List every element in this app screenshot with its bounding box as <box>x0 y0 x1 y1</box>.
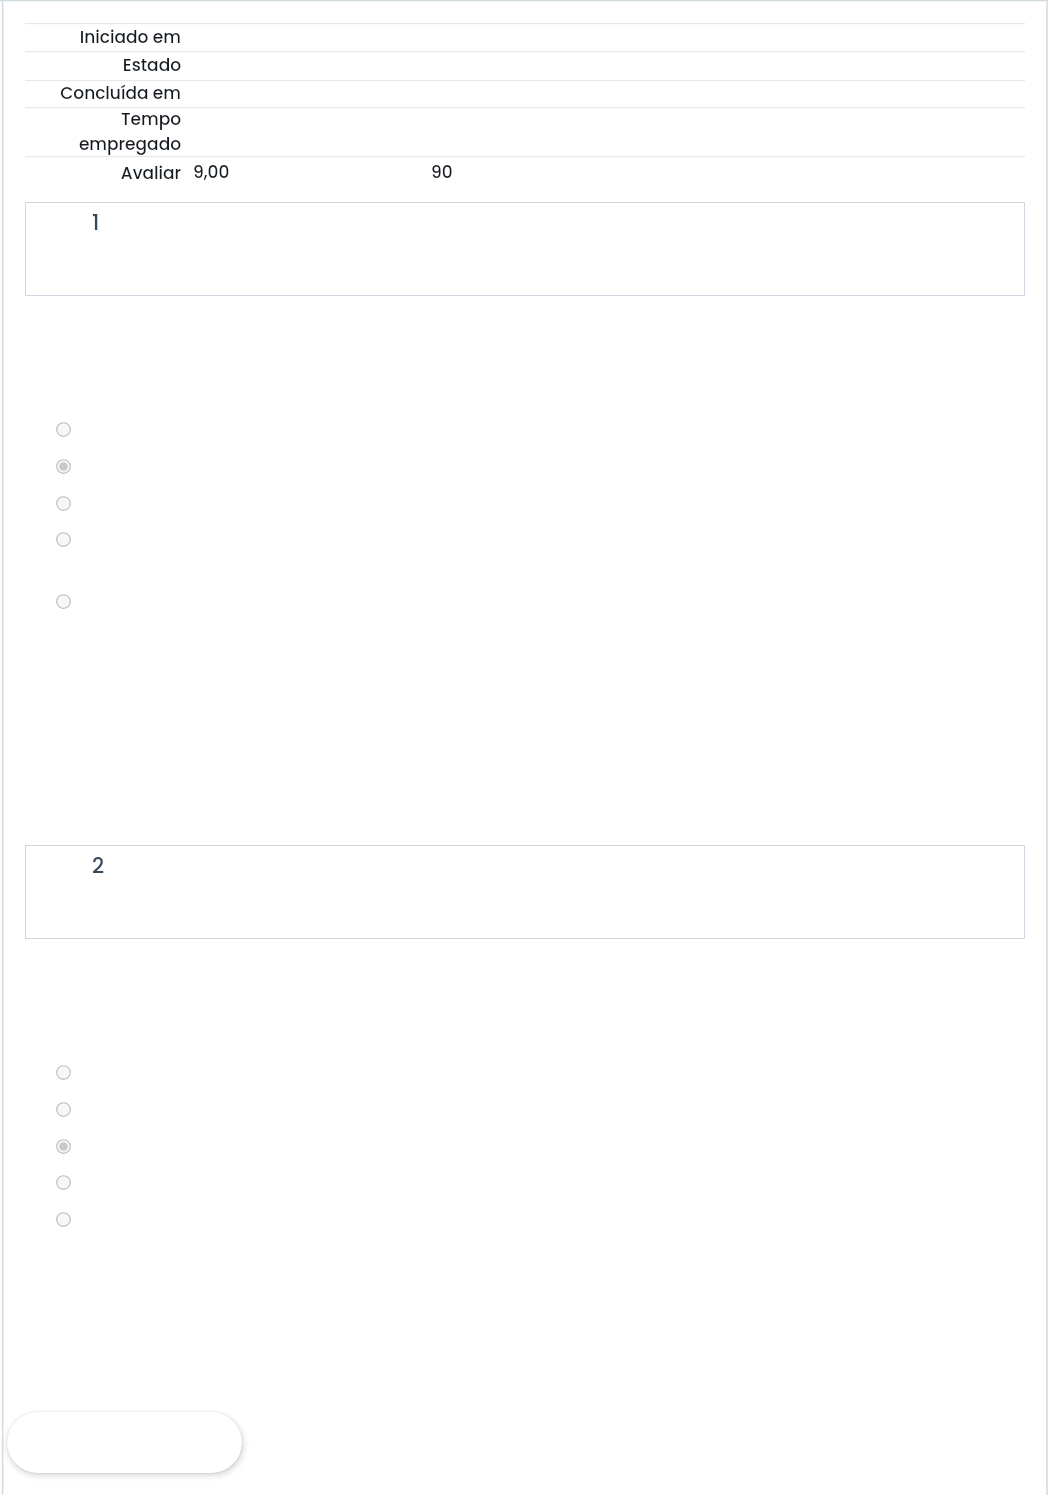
button[interactable]: Opção selecionada <box>48 451 78 481</box>
staticText: empregado <box>0 132 181 156</box>
staticText: Avaliar <box>0 161 181 185</box>
button[interactable]: Opção <box>48 1167 78 1197</box>
staticText: Iniciado em <box>0 25 181 49</box>
staticText: 90 <box>431 160 453 184</box>
staticText: 9,00 <box>193 160 230 184</box>
button[interactable]: Opção <box>48 586 78 616</box>
staticText: 1 <box>92 208 100 237</box>
staticText: 2 <box>92 851 105 880</box>
button[interactable]: Opção <box>48 414 78 444</box>
button[interactable]: Opção <box>48 524 78 554</box>
staticText: Concluída em <box>0 81 181 105</box>
button[interactable]: Finalizar revisão <box>7 1412 242 1473</box>
button[interactable]: Opção selecionada <box>48 1131 78 1161</box>
button[interactable]: Questão 2 <box>25 845 1025 939</box>
staticText: Tempo <box>0 107 181 131</box>
button[interactable]: Opção <box>48 488 78 518</box>
button[interactable]: Questão 1 <box>25 202 1025 296</box>
staticText: Estado <box>0 53 181 77</box>
button[interactable]: Opção <box>48 1057 78 1087</box>
button[interactable]: Opção <box>48 1204 78 1234</box>
button[interactable]: Opção <box>48 1094 78 1124</box>
